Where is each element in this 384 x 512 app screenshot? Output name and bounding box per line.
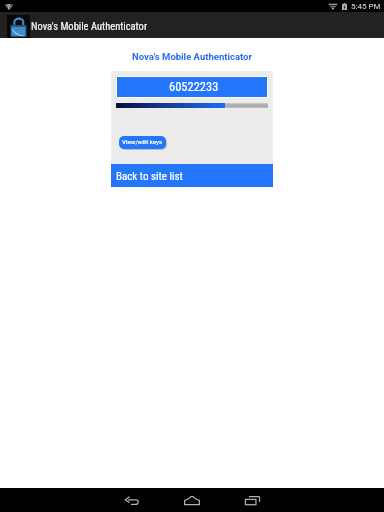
- button[interactable]: Recent apps: [222, 488, 283, 512]
- staticText: 60522233: [169, 79, 219, 94]
- staticText: ?: [7, 3, 11, 11]
- button[interactable]: Home: [162, 488, 222, 512]
- button[interactable]: View/edit keys: [119, 136, 166, 149]
- staticText: Nova's Mobile Authenticator: [0, 51, 384, 62]
- staticText: Nova's Mobile Authenticator: [31, 20, 148, 32]
- button[interactable]: 60522233: [117, 77, 267, 97]
- button[interactable]: Back: [102, 488, 162, 512]
- staticText: View/edit keys: [123, 140, 164, 147]
- staticText: View/edit keys: [122, 138, 163, 145]
- staticText: 5:45 PM: [351, 2, 381, 11]
- button[interactable]: Back to site list: [111, 164, 273, 187]
- staticText: Back to site list: [116, 170, 183, 183]
